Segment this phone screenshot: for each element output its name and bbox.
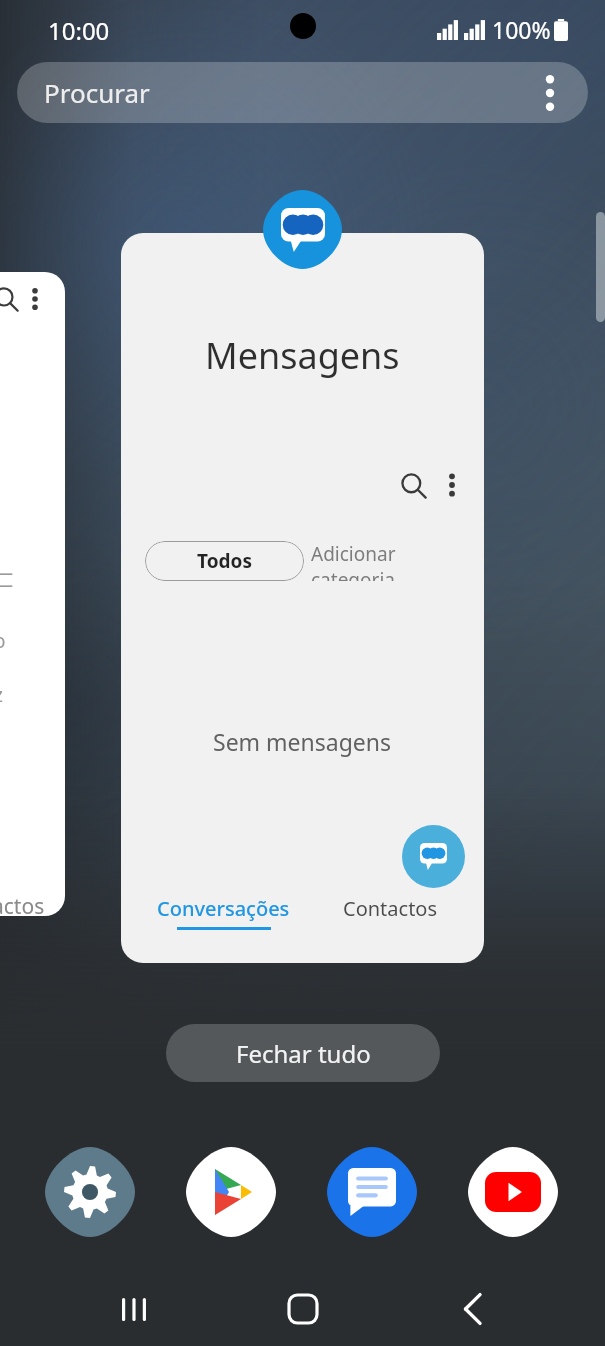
staticText: 10:00: [48, 14, 110, 47]
button[interactable]: Retroceder: [436, 1272, 510, 1346]
button[interactable]: Nova conversa: [402, 825, 465, 888]
button[interactable]: Mais opções: [434, 461, 470, 509]
button[interactable]: Contactos: [317, 895, 463, 947]
button[interactable]: Pesquisar: [393, 465, 433, 505]
staticText: 100%: [492, 14, 551, 45]
staticText: z: [0, 682, 3, 708]
button[interactable]: Play Store: [186, 1147, 276, 1237]
button[interactable]: YouTube: [468, 1147, 558, 1237]
staticText: Todos: [197, 548, 252, 574]
staticText: actos: [0, 892, 45, 916]
button[interactable]: Definições: [45, 1147, 135, 1237]
button[interactable]: Mais opções: [530, 73, 570, 113]
staticText: —: [0, 560, 14, 586]
staticText: o: [0, 628, 6, 654]
staticText: Conversações: [157, 895, 290, 922]
staticText: Sem mensagens: [213, 726, 392, 757]
staticText: Adicionar categoria: [311, 541, 471, 581]
button[interactable]: Procurar: [17, 62, 588, 123]
staticText: Contactos: [343, 895, 438, 922]
staticText: Fechar tudo: [236, 1037, 371, 1070]
button[interactable]: Adicionar categoria: [311, 541, 471, 581]
button[interactable]: Fechar tudo: [166, 1024, 440, 1082]
button[interactable]: Aplicações recentes: [98, 1272, 172, 1346]
button[interactable]: Mensagens: [327, 1147, 417, 1237]
button[interactable]: Início: [266, 1272, 340, 1346]
button[interactable]: Todos: [145, 541, 304, 581]
staticText: Procurar: [44, 75, 150, 110]
staticText: Mensagens: [205, 331, 400, 380]
button[interactable]: Mensagens: [263, 190, 342, 269]
button[interactable]: Conversações: [149, 895, 297, 947]
staticText: —: [0, 572, 14, 598]
button[interactable]: Mensagens: [121, 233, 484, 963]
button[interactable]: —: [0, 272, 65, 916]
